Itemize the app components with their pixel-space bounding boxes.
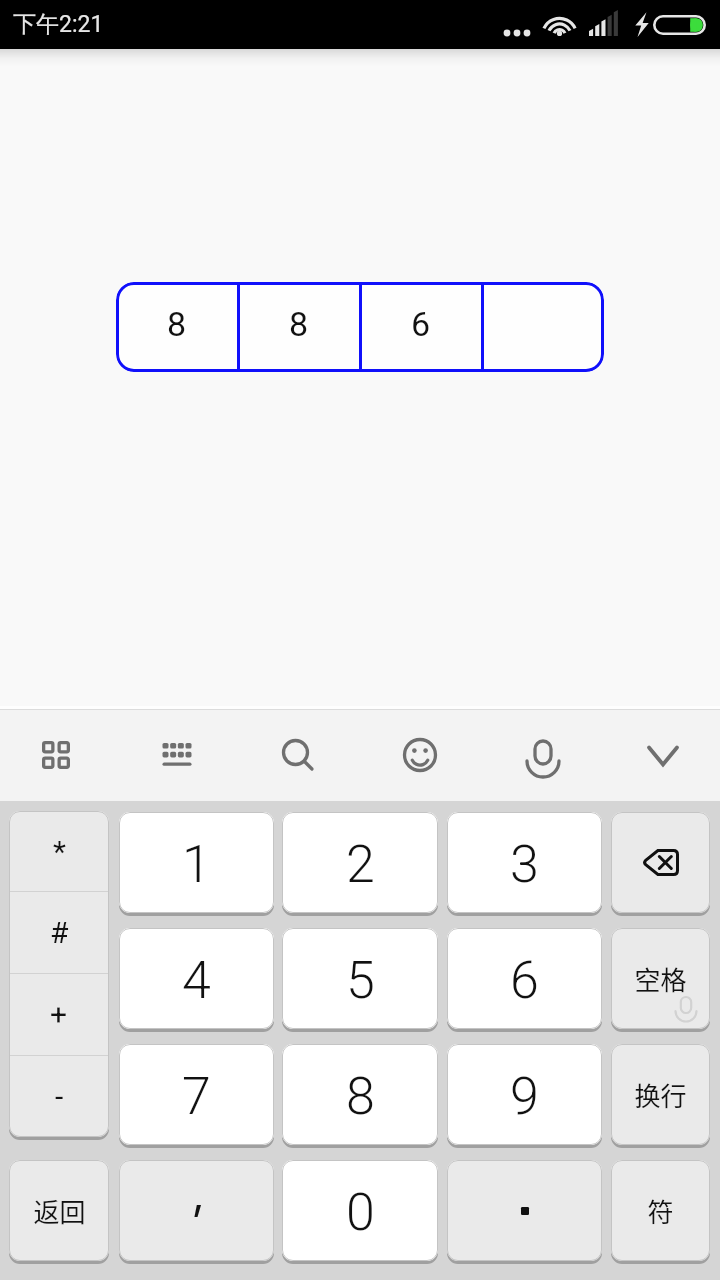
staticText: 0	[346, 1182, 375, 1243]
button[interactable]: Emoji	[374, 708, 466, 802]
staticText: 6	[510, 950, 539, 1011]
staticText: +	[50, 997, 68, 1032]
button[interactable]: Search	[252, 708, 344, 802]
staticText: 7	[182, 1066, 211, 1127]
button[interactable]: *	[9, 811, 109, 891]
button[interactable]: +	[9, 974, 109, 1055]
button[interactable]: 4	[119, 928, 274, 1032]
staticText: 2	[346, 834, 375, 895]
button[interactable]: Backspace	[611, 812, 710, 916]
button[interactable]: 6	[447, 928, 602, 1032]
button[interactable]: 9	[447, 1044, 602, 1148]
staticText: 5	[346, 950, 375, 1011]
button[interactable]: Voice input	[497, 708, 589, 802]
button[interactable]: 返回	[9, 1160, 109, 1264]
button[interactable]: #	[9, 892, 109, 973]
staticText: 换行	[634, 1076, 687, 1114]
staticText: 8	[167, 304, 187, 344]
staticText: 8	[346, 1066, 375, 1127]
button[interactable]: Hide keyboard	[617, 708, 709, 802]
staticText: 符	[647, 1192, 674, 1230]
staticText: #	[50, 915, 69, 950]
staticText: 8	[289, 304, 309, 344]
staticText: 4	[182, 950, 211, 1011]
button[interactable]: Comma	[119, 1160, 274, 1264]
staticText: 6	[411, 304, 431, 344]
button[interactable]: 符	[611, 1160, 710, 1264]
button[interactable]: Apps	[10, 708, 102, 802]
button[interactable]: Dot	[447, 1160, 602, 1264]
button[interactable]: 3	[447, 812, 602, 916]
button[interactable]: 8	[116, 282, 604, 372]
button[interactable]: 8	[282, 1044, 438, 1148]
button[interactable]: 5	[282, 928, 438, 1032]
button[interactable]: 7	[119, 1044, 274, 1148]
staticText: 1	[182, 834, 211, 895]
button[interactable]: 1	[119, 812, 274, 916]
staticText: 3	[510, 834, 539, 895]
staticText: 9	[510, 1066, 539, 1127]
button[interactable]: 空格	[611, 928, 710, 1032]
staticText: 返回	[33, 1192, 86, 1230]
staticText: *	[53, 834, 66, 869]
button[interactable]: -	[9, 1056, 109, 1137]
button[interactable]: 2	[282, 812, 438, 916]
button[interactable]: 0	[282, 1160, 438, 1264]
staticText: 空格	[634, 960, 687, 998]
staticText: 下午2:21	[13, 10, 104, 39]
button[interactable]: Keyboard layout	[131, 708, 223, 802]
staticText: -	[55, 1079, 64, 1114]
button[interactable]: 换行	[611, 1044, 710, 1148]
